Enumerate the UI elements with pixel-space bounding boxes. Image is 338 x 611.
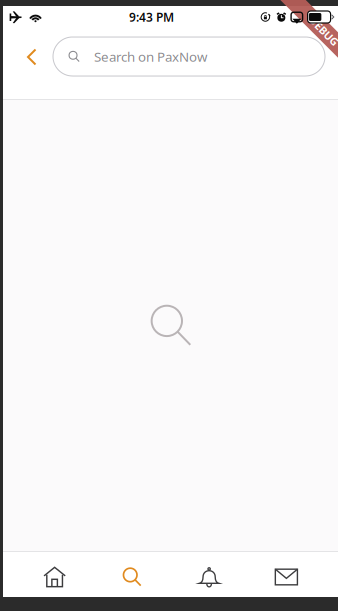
button[interactable]: Search (93, 552, 170, 597)
button[interactable]: Search on PaxNow (53, 37, 325, 76)
staticText: Search on PaxNow (94, 48, 207, 65)
button[interactable]: Back (3, 34, 53, 78)
staticText: DEBUG (305, 24, 338, 38)
button[interactable]: Messages (248, 552, 325, 597)
button[interactable]: Notifications (170, 552, 248, 597)
button[interactable]: Home (16, 552, 93, 597)
staticText: 9:43 PM (129, 9, 174, 25)
